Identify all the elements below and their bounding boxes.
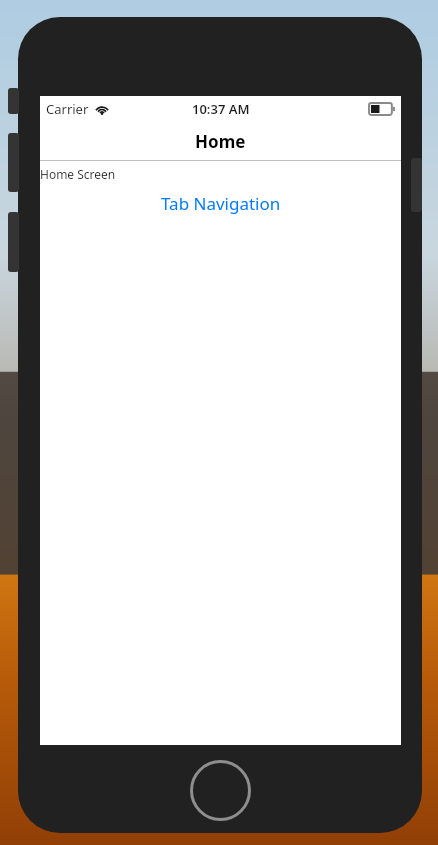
staticText: 10:37 AM bbox=[192, 100, 250, 118]
staticText: Carrier bbox=[46, 100, 89, 118]
button[interactable]: Tab Navigation bbox=[40, 192, 401, 215]
button[interactable]: Home bbox=[190, 760, 251, 821]
staticText: Tab Navigation bbox=[161, 192, 281, 215]
staticText: Home Screen bbox=[40, 166, 116, 182]
staticText: Home bbox=[195, 130, 246, 153]
